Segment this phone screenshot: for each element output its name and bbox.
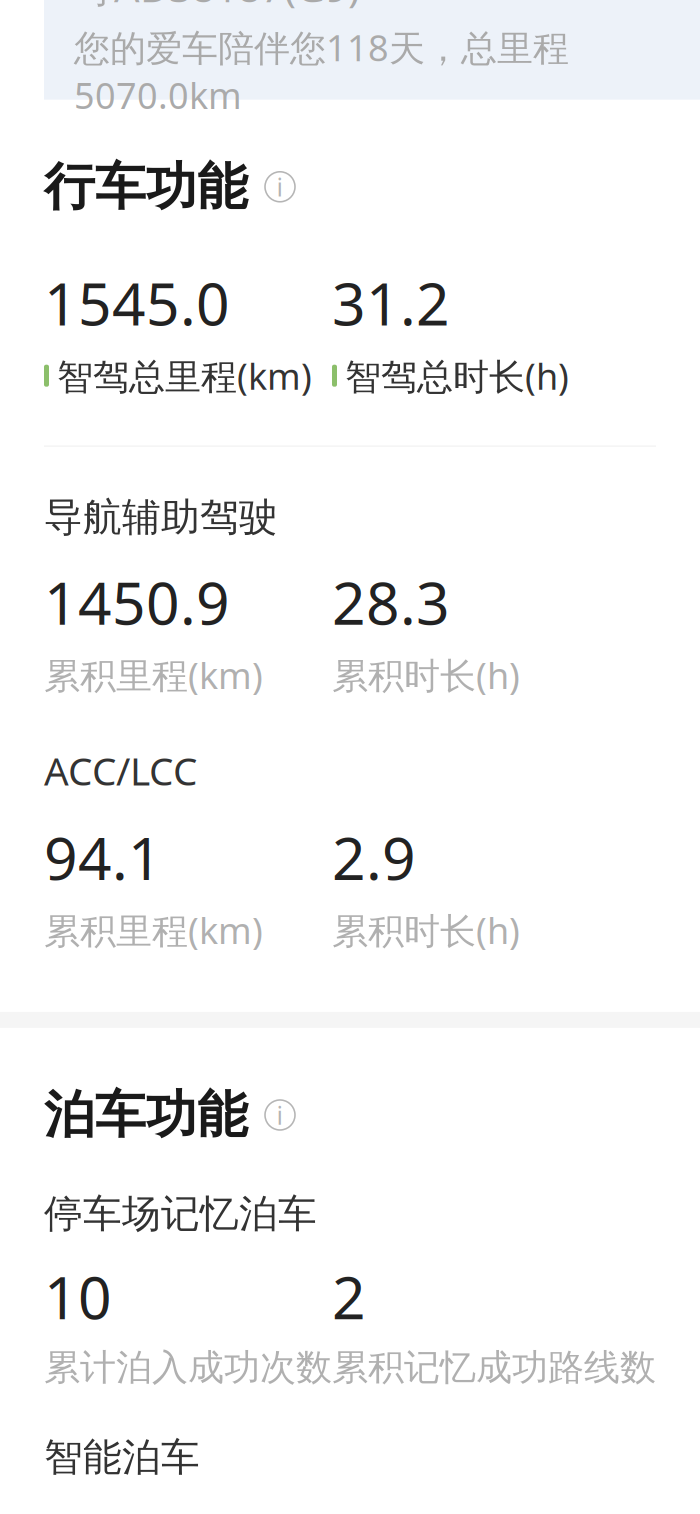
staticText: 31.2: [332, 264, 450, 342]
button[interactable]: About 行车功能: [262, 169, 298, 205]
staticText: 导航辅助驾驶: [44, 494, 278, 541]
staticText: 1545.0: [44, 264, 230, 342]
staticText: ACC/LCC: [44, 745, 197, 796]
staticText: 粤AD38187(G9): [74, 0, 360, 13]
staticText: 累积时长(h): [332, 651, 520, 699]
staticText: 停车场记忆泊车: [44, 1190, 317, 1238]
staticText: 累积记忆成功路线数: [332, 1345, 656, 1390]
staticText: 94.1: [44, 818, 162, 896]
staticText: 累积里程(km): [44, 651, 263, 699]
staticText: 累积里程(km): [44, 906, 263, 954]
staticText: 泊车功能: [44, 1084, 248, 1146]
staticText: 2.9: [332, 818, 416, 896]
staticText: 累计泊入成功次数: [44, 1345, 332, 1390]
button[interactable]: About 泊车功能: [262, 1097, 298, 1133]
staticText: 28.3: [332, 563, 450, 641]
staticText: 累积时长(h): [332, 906, 520, 954]
staticText: i: [276, 170, 283, 204]
staticText: 2: [332, 1258, 366, 1335]
staticText: 智能泊车: [44, 1434, 200, 1481]
staticText: 智驾总里程(km): [57, 352, 312, 400]
staticText: 1450.9: [44, 563, 230, 641]
staticText: 10: [44, 1258, 112, 1335]
staticText: 行车功能: [44, 156, 248, 218]
staticText: i: [276, 1098, 283, 1132]
staticText: 您的爱车陪伴您118天，总里程5070.0km: [74, 23, 569, 119]
staticText: 智驾总时长(h): [345, 352, 569, 400]
